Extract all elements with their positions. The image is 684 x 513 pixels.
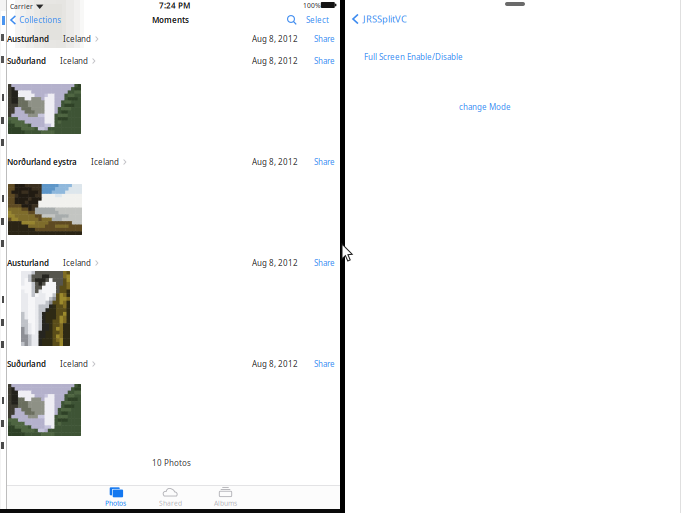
staticText: Iceland bbox=[63, 258, 91, 268]
staticText: Austurland bbox=[7, 34, 49, 44]
staticText: Suðurland bbox=[7, 56, 46, 66]
staticText: 7:24 PM bbox=[159, 0, 190, 11]
staticText: JRSSplitVC bbox=[363, 13, 407, 25]
button[interactable]: Share bbox=[314, 357, 335, 371]
button[interactable]: Select bbox=[304, 11, 331, 29]
button[interactable]: JRSSplitVC bbox=[350, 11, 409, 27]
staticText: 100% bbox=[303, 1, 321, 10]
button[interactable]: Share bbox=[314, 32, 335, 46]
button[interactable]: Photos bbox=[88, 486, 143, 508]
staticText: Share bbox=[314, 258, 335, 268]
staticText: 10 Photos bbox=[152, 458, 191, 468]
staticText: Albums bbox=[214, 499, 237, 508]
staticText: Iceland bbox=[60, 56, 88, 66]
staticText: Shared bbox=[159, 499, 182, 508]
staticText: Aug 8, 2012 bbox=[252, 56, 298, 66]
staticText: Norðurland eystra bbox=[7, 157, 77, 167]
button[interactable]: Share bbox=[314, 256, 335, 270]
staticText: Iceland bbox=[63, 34, 91, 44]
staticText: Aug 8, 2012 bbox=[252, 34, 298, 44]
staticText: Collections bbox=[19, 15, 61, 25]
staticText: Austurland bbox=[7, 258, 49, 268]
button[interactable]: Full Screen Enable/Disable bbox=[362, 50, 465, 64]
staticText: Select bbox=[306, 15, 329, 25]
staticText: Share bbox=[314, 359, 335, 369]
staticText: Share bbox=[314, 157, 335, 167]
staticText: Aug 8, 2012 bbox=[252, 258, 298, 268]
button[interactable]: Shared bbox=[143, 486, 198, 508]
button[interactable]: Austurland bbox=[7, 32, 98, 46]
staticText: Photos bbox=[105, 499, 126, 508]
staticText: change Mode bbox=[459, 102, 511, 112]
button[interactable]: Austurland bbox=[7, 256, 98, 270]
staticText: Iceland bbox=[91, 157, 119, 167]
staticText: Iceland bbox=[60, 359, 88, 369]
button[interactable]: Share bbox=[314, 155, 335, 169]
button[interactable]: Albums bbox=[198, 486, 253, 508]
staticText: Suðurland bbox=[7, 359, 46, 369]
staticText: Full Screen Enable/Disable bbox=[364, 52, 463, 62]
button[interactable]: Search bbox=[285, 11, 299, 29]
button[interactable]: Share bbox=[314, 54, 335, 68]
button[interactable]: Collections bbox=[8, 11, 63, 29]
staticText: Share bbox=[314, 56, 335, 66]
staticText: Aug 8, 2012 bbox=[252, 157, 298, 167]
staticText: Moments bbox=[152, 15, 189, 25]
button[interactable]: change Mode bbox=[457, 100, 513, 114]
button[interactable]: Suðurland bbox=[7, 54, 95, 68]
staticText: Aug 8, 2012 bbox=[252, 359, 298, 369]
staticText: Carrier bbox=[10, 2, 33, 11]
button[interactable]: Norðurland eystra bbox=[7, 155, 126, 169]
button[interactable]: Suðurland bbox=[7, 357, 95, 371]
staticText: Share bbox=[314, 34, 335, 44]
